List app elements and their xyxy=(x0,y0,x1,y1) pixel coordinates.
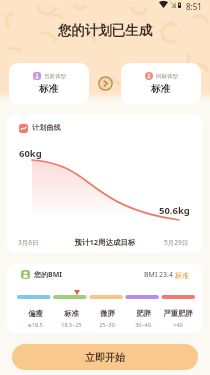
staticText: 立即开始 xyxy=(85,351,125,364)
staticText: 严重肥胖 xyxy=(163,309,193,318)
staticText: 标准 xyxy=(151,83,171,95)
staticText: ≤18.5 xyxy=(27,321,43,328)
button[interactable]: 当前体型 xyxy=(9,63,89,104)
button[interactable]: 目标体型 xyxy=(121,63,201,104)
staticText: 目标体型 xyxy=(156,73,178,80)
staticText: 标准 xyxy=(64,309,79,318)
staticText: BMI 23.4 xyxy=(144,270,175,280)
staticText: 微胖 xyxy=(100,309,115,318)
staticText: 25~30 xyxy=(99,321,115,328)
staticText: 8:51 xyxy=(186,1,202,12)
staticText: 您的计划已生成 xyxy=(0,22,210,39)
staticText: >40 xyxy=(173,321,183,328)
staticText: 18.5~25 xyxy=(61,321,82,328)
staticText: 标准 xyxy=(175,271,189,280)
staticText: 计划曲线 xyxy=(32,123,61,132)
staticText: 预计12周达成目标 xyxy=(7,237,203,247)
staticText: 60kg xyxy=(19,147,42,160)
staticText: 30~40 xyxy=(135,321,151,328)
staticText: 偏瘦 xyxy=(28,309,43,318)
button[interactable]: 计划曲线 xyxy=(7,114,203,253)
button[interactable]: 您的BMI xyxy=(7,264,203,333)
staticText: 3月6日 xyxy=(18,238,39,247)
button[interactable]: 下一步 xyxy=(98,76,113,91)
button[interactable]: 立即开始 xyxy=(12,344,198,370)
staticText: 您的BMI xyxy=(34,270,62,280)
staticText: 肥胖 xyxy=(136,309,151,318)
staticText: 5月29日 xyxy=(164,238,189,247)
staticText: 当前体型 xyxy=(44,73,66,80)
staticText: 50.6kg xyxy=(159,204,190,217)
staticText: 标准 xyxy=(39,83,59,95)
